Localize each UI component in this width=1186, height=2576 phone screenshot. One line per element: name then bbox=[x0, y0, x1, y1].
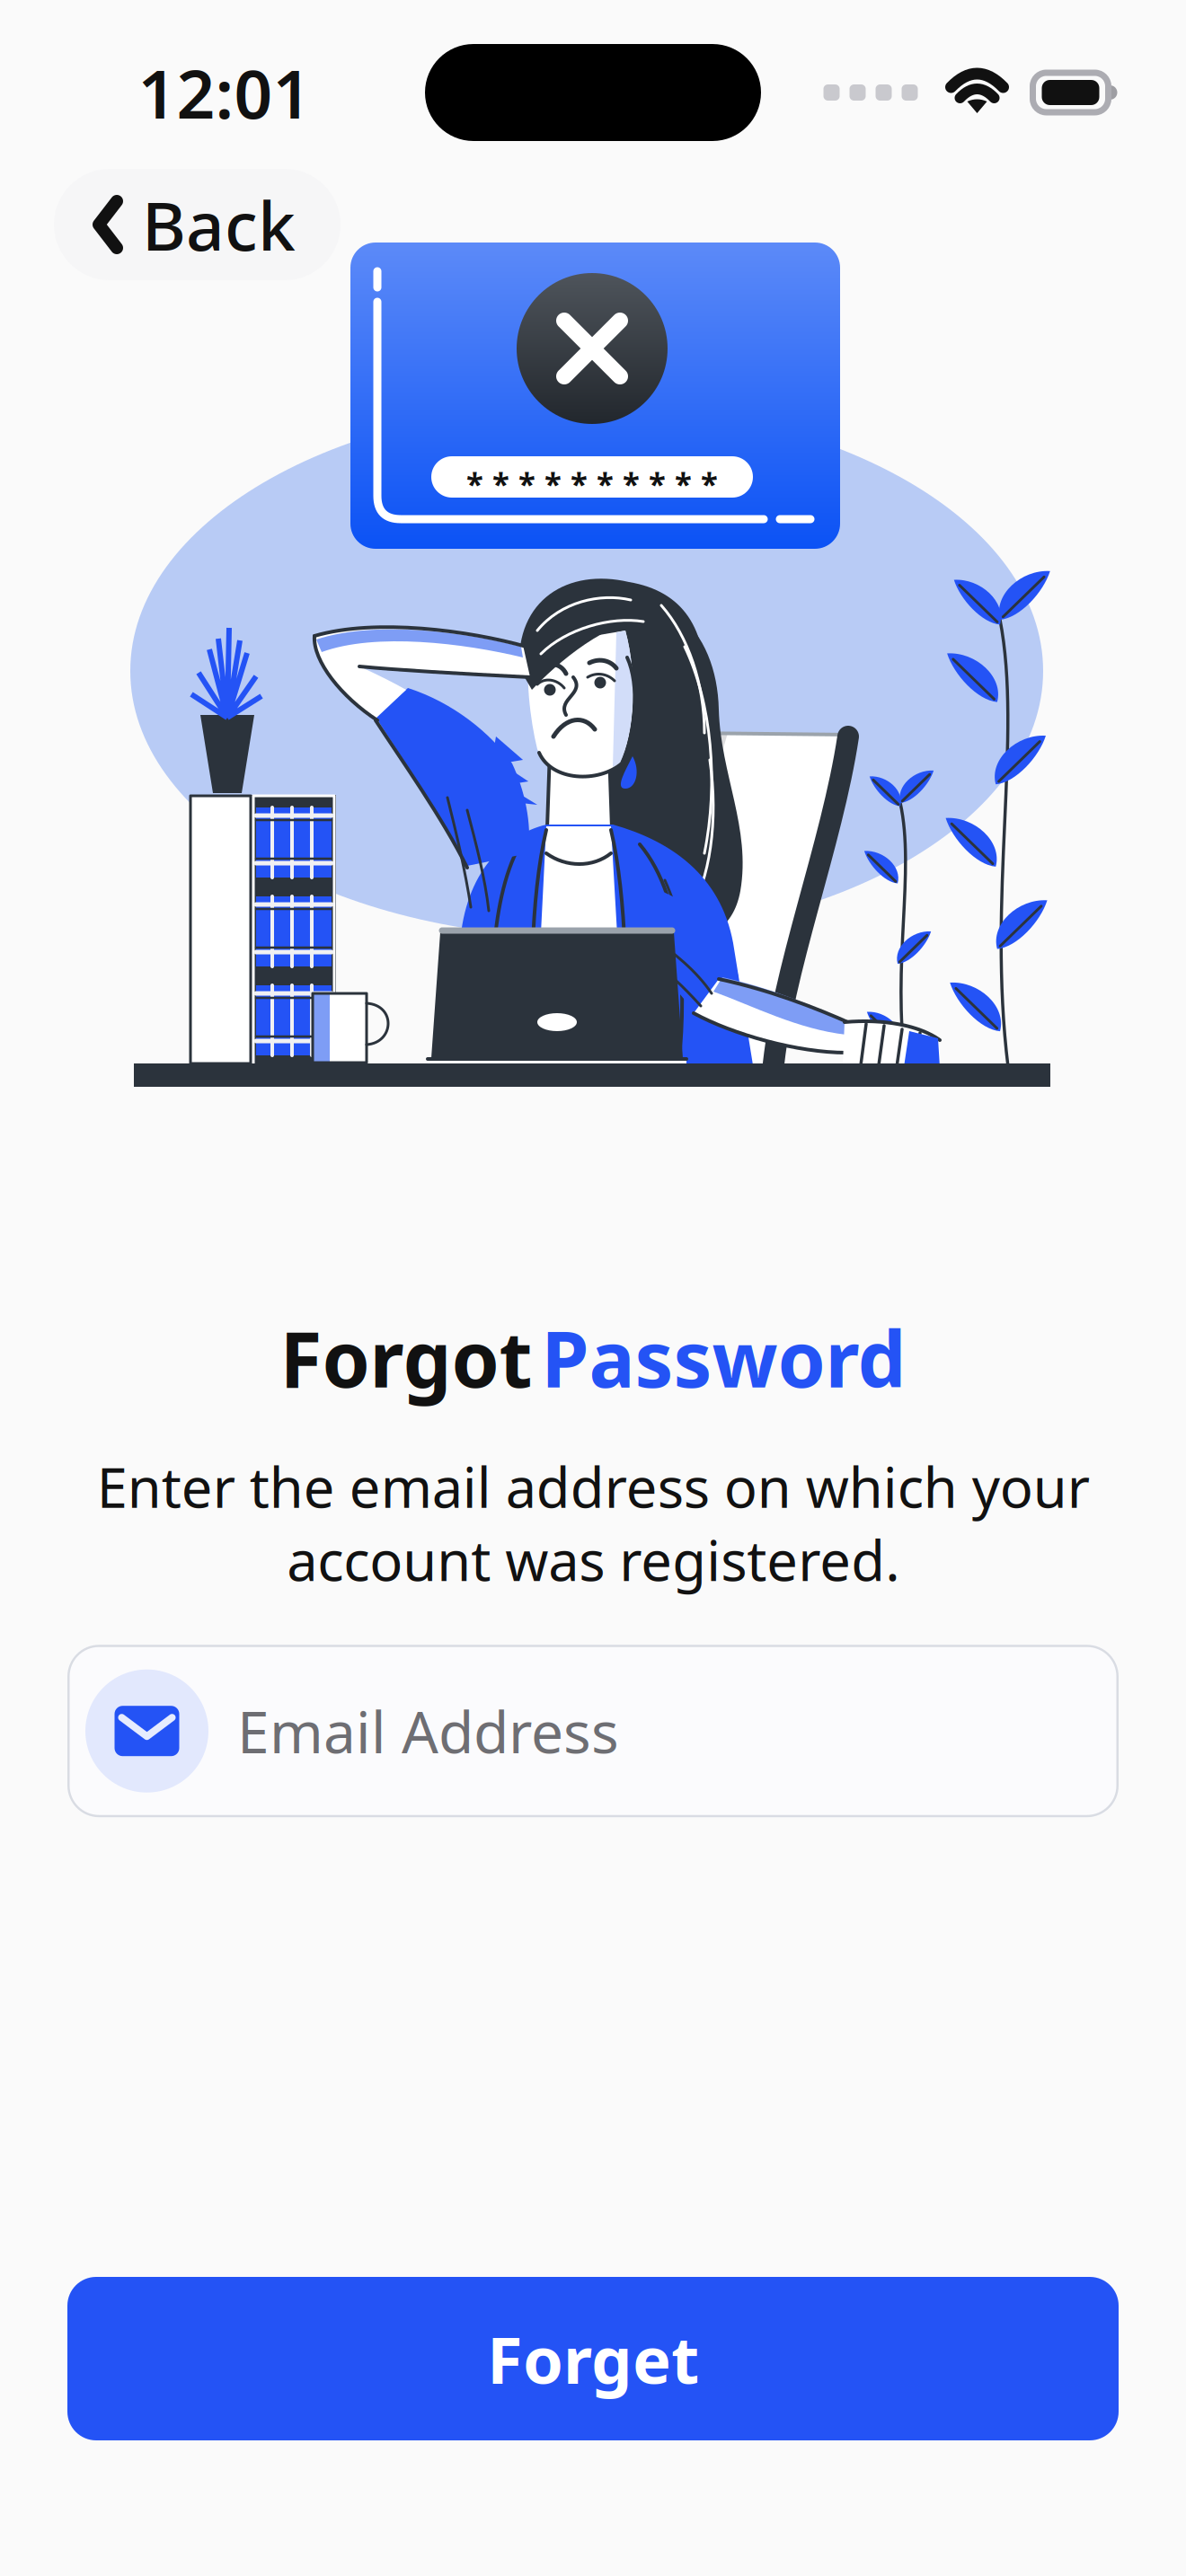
staticText: * bbox=[544, 463, 562, 504]
staticText: Enter the email address on which your ac… bbox=[97, 1450, 1089, 1596]
staticText: Back bbox=[142, 180, 296, 269]
staticText: Email Address bbox=[237, 1693, 619, 1769]
staticText: Forget bbox=[487, 2316, 699, 2402]
staticText: * bbox=[649, 463, 666, 504]
staticText: Forgot bbox=[280, 1307, 532, 1409]
staticText: * bbox=[466, 463, 483, 504]
button[interactable]: Forget bbox=[67, 2277, 1119, 2440]
staticText: * bbox=[675, 463, 692, 504]
staticText: 12:01 bbox=[138, 48, 311, 137]
button[interactable]: Back bbox=[54, 169, 341, 280]
staticText: * bbox=[518, 463, 535, 504]
staticText: * bbox=[701, 463, 718, 504]
staticText: Password bbox=[541, 1307, 906, 1409]
staticText: * bbox=[571, 463, 588, 504]
staticText: * bbox=[492, 463, 509, 504]
staticText: * bbox=[597, 463, 614, 504]
staticText: * bbox=[623, 463, 640, 504]
